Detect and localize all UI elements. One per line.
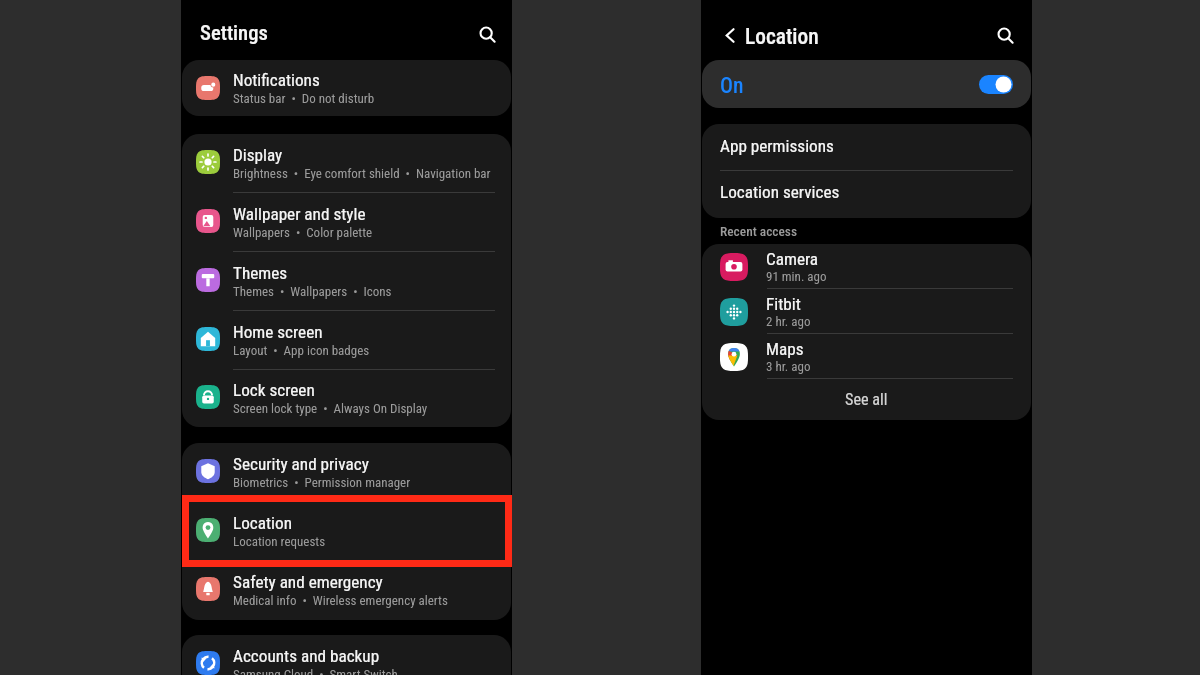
button[interactable]: See all [702,379,1031,420]
button[interactable]: Themes [182,252,511,311]
staticText: Location requests [233,534,326,549]
button[interactable]: Location services [702,171,1031,218]
staticText: Location [745,24,819,49]
button[interactable]: Safety and emergency [182,561,511,620]
staticText: Wallpapers • Color palette [233,225,373,240]
button[interactable]: Lock screen [182,370,511,427]
staticText: Settings [200,21,268,45]
button[interactable]: Search [471,18,503,50]
button[interactable]: Fitbit [702,289,1031,334]
button[interactable]: Display [182,134,511,193]
staticText: On [720,73,744,98]
staticText: Location services [720,182,840,202]
button[interactable]: Accounts and backup [182,635,511,675]
button[interactable]: App permissions [702,124,1031,171]
staticText: Layout • App icon badges [233,343,370,358]
staticText: Wallpaper and style [233,204,366,224]
staticText: Themes [233,263,288,283]
staticText: Themes • Wallpapers • Icons [233,284,392,299]
staticText: App permissions [720,136,834,156]
button[interactable]: On [702,60,1031,108]
staticText: Camera [766,249,819,269]
staticText: Display [233,145,283,165]
staticText: See all [845,390,888,409]
staticText: Lock screen [233,380,315,400]
staticText: Screen lock type • Always On Display [233,401,428,416]
button[interactable]: Security and privacy [182,443,511,502]
staticText: Home screen [233,322,323,342]
staticText: Notifications [233,70,320,90]
button[interactable]: Back [715,20,745,50]
staticText: Fitbit [766,294,801,314]
button[interactable]: Notifications [182,60,511,116]
staticText: 3 hr. ago [766,359,811,374]
staticText: Brightness • Eye comfort shield • Naviga… [233,166,491,181]
staticText: Accounts and backup [233,646,380,666]
staticText: Recent access [720,224,798,240]
staticText: Location [233,513,292,533]
button[interactable]: Location [182,502,511,561]
staticText: Safety and emergency [233,572,383,592]
staticText: Maps [766,339,804,359]
button[interactable]: Home screen [182,311,511,370]
staticText: 91 min. ago [766,269,827,284]
staticText: Status bar • Do not disturb [233,91,375,106]
staticText: Samsung Cloud • Smart Switch [233,667,398,675]
button[interactable]: Camera [702,244,1031,289]
staticText: Biometrics • Permission manager [233,475,411,490]
staticText: 2 hr. ago [766,314,811,329]
button[interactable]: Wallpaper and style [182,193,511,252]
staticText: Medical info • Wireless emergency alerts [233,593,448,608]
button[interactable]: Maps [702,334,1031,379]
staticText: Security and privacy [233,454,369,474]
button[interactable]: Search [989,19,1021,51]
